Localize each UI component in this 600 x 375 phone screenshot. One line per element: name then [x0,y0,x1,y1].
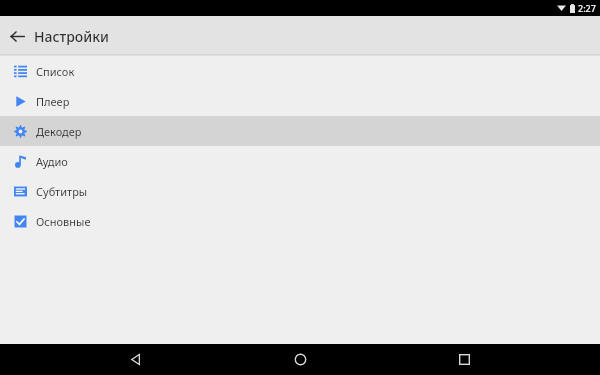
button[interactable]: Аудио [0,146,600,176]
button[interactable]: Назад [108,344,164,375]
staticText: 2:27 [578,2,596,14]
staticText: Плеер [36,94,70,109]
button[interactable]: Декодер [0,116,600,146]
button[interactable]: Субтитры [0,176,600,206]
staticText: Настройки [34,27,109,46]
button[interactable]: Плеер [0,86,600,116]
staticText: Аудио [36,154,68,169]
button[interactable]: Список [0,56,600,86]
button[interactable]: Основные [0,206,600,236]
button[interactable]: Домой [272,344,328,375]
button[interactable]: Назад [0,19,34,53]
staticText: Субтитры [36,184,88,199]
button[interactable]: Обзор [436,344,492,375]
staticText: Список [36,64,75,79]
staticText: Декодер [36,124,82,139]
staticText: Основные [36,214,91,229]
